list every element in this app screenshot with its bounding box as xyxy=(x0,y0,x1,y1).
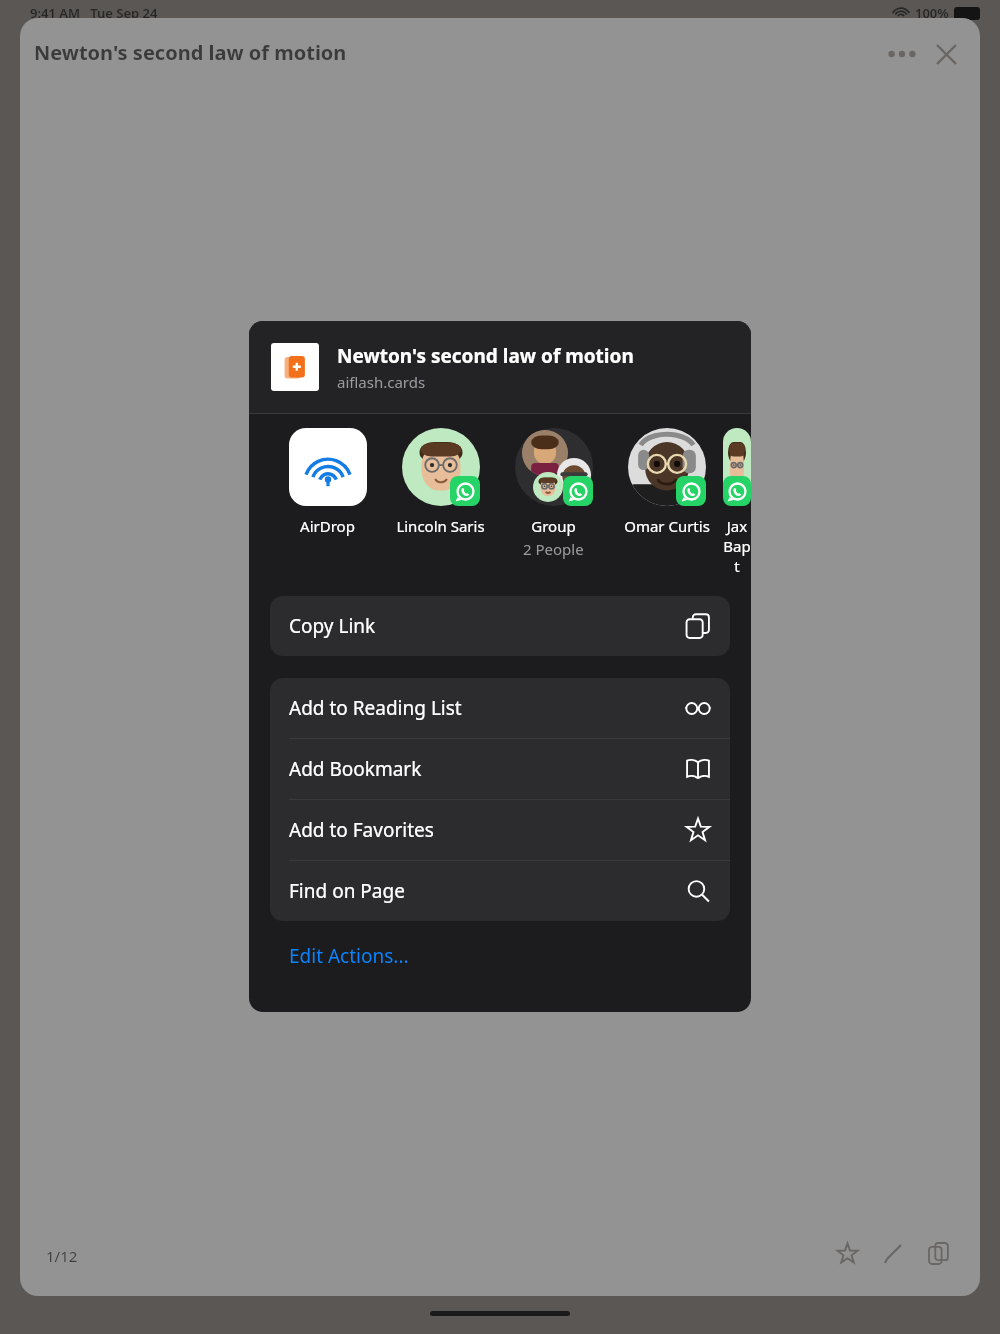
staticText: Add to Reading List xyxy=(289,695,685,721)
button[interactable]: Find on Page xyxy=(270,861,730,921)
staticText: AirDrop xyxy=(300,516,355,536)
staticText: 1/12 xyxy=(46,1246,78,1266)
button[interactable]: More options xyxy=(880,32,924,76)
staticText: Find on Page xyxy=(289,878,685,904)
button[interactable]: Close xyxy=(924,32,968,76)
staticText: Copy Link xyxy=(289,613,685,639)
staticText: Group xyxy=(531,516,576,536)
staticText: Add to Favorites xyxy=(289,817,685,843)
button[interactable]: Cards xyxy=(916,1230,962,1276)
button[interactable]: Jax Bapt xyxy=(723,428,751,576)
button[interactable]: Edit Actions... xyxy=(249,939,751,983)
button[interactable]: Newton's second law of motion xyxy=(249,321,751,413)
staticText: Newton's second law of motion xyxy=(337,343,634,369)
staticText: aiflash.cards xyxy=(337,372,426,392)
staticText: Lincoln Saris xyxy=(396,516,485,536)
staticText: Jax Bapt xyxy=(723,516,751,576)
button[interactable]: Copy Link xyxy=(270,596,730,656)
staticText: Omar Curtis xyxy=(624,516,710,536)
button[interactable]: Favorite xyxy=(824,1230,870,1276)
button[interactable]: Add to Favorites xyxy=(270,800,730,860)
staticText: 2 People xyxy=(523,539,584,559)
staticText: 9:41 AM Tue Sep 24 xyxy=(30,4,158,22)
button[interactable]: Add to Reading List xyxy=(270,678,730,738)
staticText: 100% xyxy=(915,4,949,22)
staticText: Add Bookmark xyxy=(289,756,685,782)
staticText: Edit Actions... xyxy=(289,943,409,969)
button[interactable]: Lincoln Saris xyxy=(384,428,497,536)
button[interactable]: Add Bookmark xyxy=(270,739,730,799)
button[interactable]: Group xyxy=(497,428,610,559)
button[interactable]: Edit xyxy=(870,1230,916,1276)
button[interactable]: Omar Curtis xyxy=(610,428,723,536)
staticText: Newton's second law of motion xyxy=(34,39,347,66)
button[interactable]: AirDrop xyxy=(271,428,384,536)
